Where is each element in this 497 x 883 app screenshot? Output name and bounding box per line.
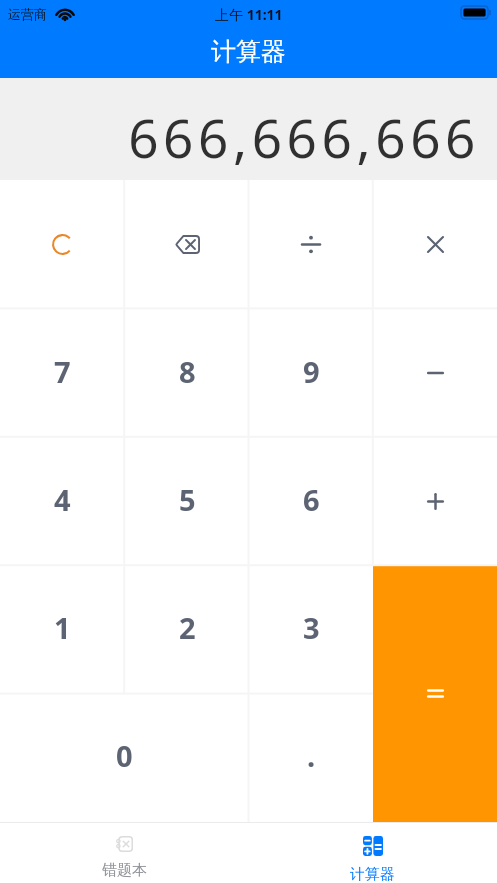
staticText: 上午 11:11 xyxy=(215,5,283,24)
button[interactable]: 5 xyxy=(125,437,249,565)
staticText: 6 xyxy=(303,480,320,519)
button[interactable]: Divide xyxy=(249,180,373,309)
staticText: 7 xyxy=(54,352,71,391)
staticText: 8 xyxy=(179,352,196,391)
staticText: 2 xyxy=(179,608,196,647)
button[interactable]: 0 xyxy=(0,693,249,822)
button[interactable]: Equals xyxy=(373,565,497,822)
staticText: 5 xyxy=(179,480,196,519)
staticText: . xyxy=(307,736,316,775)
button[interactable]: Plus xyxy=(373,437,497,565)
staticText: 0 xyxy=(116,736,133,775)
button[interactable]: 7 xyxy=(0,309,125,437)
button[interactable]: Minus xyxy=(373,309,497,437)
button[interactable]: 错题本 xyxy=(0,823,248,883)
button[interactable]: 9 xyxy=(249,309,373,437)
staticText: 666,666,666 xyxy=(128,101,480,173)
staticText: 3 xyxy=(303,608,320,647)
staticText: 计算器 xyxy=(350,865,395,883)
button[interactable]: 6 xyxy=(249,437,373,565)
staticText: 运营商 xyxy=(8,6,47,22)
button[interactable]: . xyxy=(249,693,373,822)
button[interactable]: 4 xyxy=(0,437,125,565)
button[interactable]: 8 xyxy=(125,309,249,437)
button[interactable]: 3 xyxy=(249,565,373,693)
button[interactable]: Backspace xyxy=(125,180,249,309)
button[interactable]: Multiply xyxy=(373,180,497,309)
staticText: 9 xyxy=(303,352,320,391)
staticText: 计算器 xyxy=(211,36,286,67)
staticText: 4 xyxy=(54,480,71,519)
staticText: 错题本 xyxy=(102,861,147,880)
button[interactable]: 1 xyxy=(0,565,125,693)
button[interactable]: Clear xyxy=(0,180,125,309)
staticText: 1 xyxy=(54,608,71,647)
button[interactable]: 计算器 xyxy=(248,823,497,883)
button[interactable]: 2 xyxy=(125,565,249,693)
